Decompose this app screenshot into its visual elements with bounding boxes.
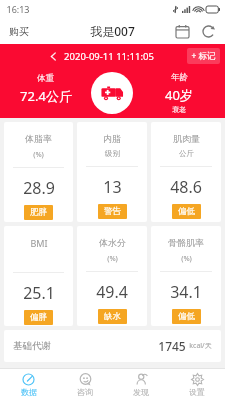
staticText: 48.6: [170, 176, 202, 198]
staticText: 2020-09-11 11:11:05: [64, 50, 154, 63]
button[interactable]: 肌肉量: [151, 122, 221, 222]
button[interactable]: 基础代谢: [4, 330, 221, 362]
staticText: 34.1: [170, 281, 202, 303]
staticText: 内脂: [103, 133, 121, 144]
staticText: 28.9: [23, 177, 55, 199]
button[interactable]: Calendar: [171, 20, 193, 42]
staticText: 16:13: [6, 3, 30, 15]
staticText: 购买: [9, 25, 29, 38]
staticText: 发现: [133, 387, 149, 397]
button[interactable]: 骨骼肌率: [151, 226, 221, 326]
staticText: 13: [103, 176, 122, 198]
staticText: 肥胖: [30, 207, 47, 218]
staticText: 25.1: [23, 282, 55, 304]
button[interactable]: 购买: [0, 21, 38, 42]
staticText: 数据: [21, 387, 37, 397]
staticText: 衰老: [172, 105, 186, 114]
staticText: (%): [181, 253, 192, 263]
staticText: 1745: [158, 338, 186, 354]
staticText: 偏胖: [30, 312, 47, 323]
button[interactable]: 体水分: [77, 226, 147, 326]
staticText: 缺水: [104, 311, 121, 322]
button[interactable]: 发现: [113, 369, 169, 400]
button[interactable]: + 标记: [187, 48, 220, 64]
staticText: 肌肉量: [173, 133, 200, 144]
staticText: 设置: [189, 387, 205, 397]
staticText: 年龄: [171, 72, 188, 83]
button[interactable]: BMI: [4, 226, 73, 326]
staticText: 偏低: [178, 311, 195, 322]
staticText: 体重: [37, 73, 54, 84]
staticText: (%): [33, 149, 44, 159]
staticText: BMI: [30, 237, 48, 249]
staticText: 体脂率: [25, 133, 52, 144]
staticText: 偏低: [178, 206, 195, 217]
staticText: 体水分: [99, 237, 126, 248]
staticText: 级别: [105, 149, 120, 158]
staticText: (%): [107, 253, 118, 263]
staticText: 咨询: [77, 387, 93, 397]
button[interactable]: Refresh: [197, 20, 219, 42]
staticText: 40岁: [165, 86, 193, 104]
staticText: 49.4: [96, 281, 128, 303]
staticText: 骨骼肌率: [168, 237, 204, 248]
button[interactable]: 数据: [0, 369, 57, 400]
staticText: 公斤: [179, 149, 194, 158]
staticText: kcal/天: [189, 341, 212, 351]
button[interactable]: 设置: [169, 369, 225, 400]
staticText: 警告: [104, 206, 121, 217]
button[interactable]: 内脂: [77, 122, 147, 222]
button[interactable]: Back: [48, 51, 59, 62]
button[interactable]: 咨询: [57, 369, 113, 400]
staticText: + 标记: [191, 50, 216, 62]
staticText: 基础代谢: [13, 340, 51, 352]
button[interactable]: 体脂率: [4, 122, 73, 222]
staticText: 72.4公斤: [20, 87, 72, 105]
staticText: 我是007: [90, 23, 135, 39]
